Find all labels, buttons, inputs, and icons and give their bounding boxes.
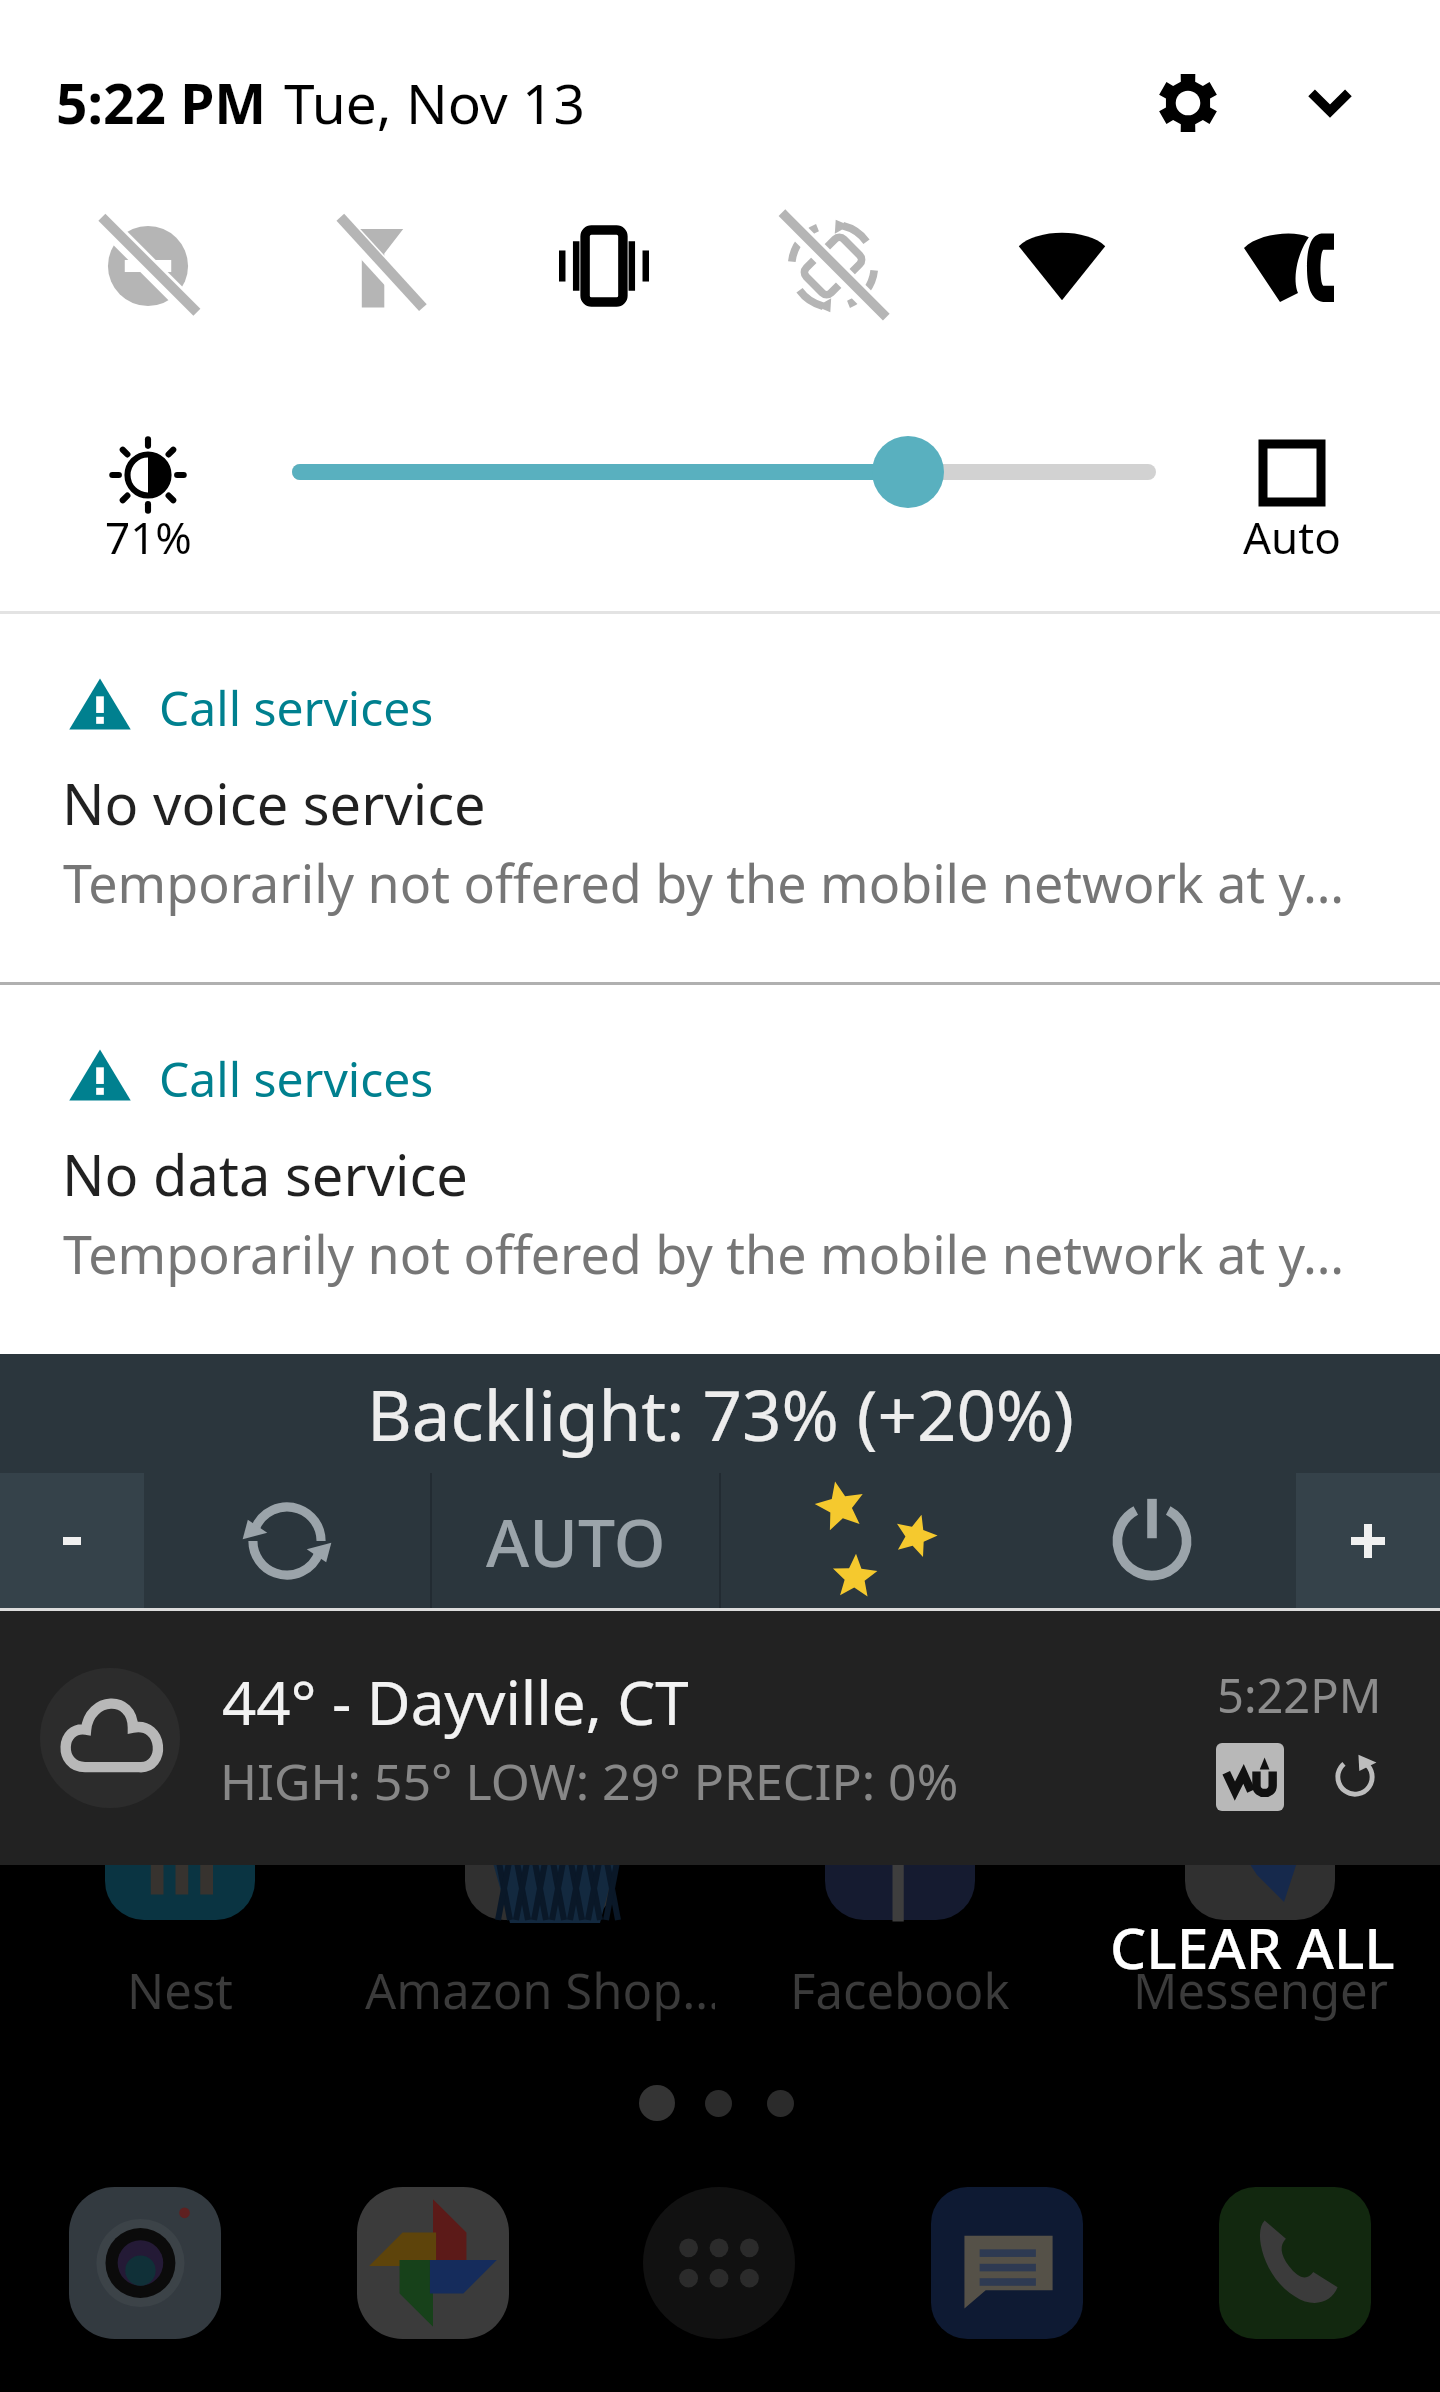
button[interactable]: Auto brightness <box>1222 430 1362 605</box>
button[interactable]: Call services <box>0 985 1440 1353</box>
staticText: Messenger <box>1133 1957 1388 2024</box>
button[interactable]: Messenger <box>1085 1760 1435 2050</box>
staticText: Temporarily not offered by the mobile ne… <box>63 847 1345 918</box>
button[interactable]: Facebook <box>725 1760 1075 2050</box>
staticText: Amazon Shop… <box>365 1957 715 2024</box>
button[interactable]: Phone <box>1219 2187 1371 2339</box>
button[interactable]: Increase backlight <box>1296 1473 1440 1608</box>
button[interactable]: Messages <box>931 2187 1083 2339</box>
button[interactable]: Decrease backlight <box>0 1473 144 1608</box>
button[interactable]: Vibrate <box>529 182 679 350</box>
button[interactable]: Auto refresh <box>144 1473 430 1608</box>
button[interactable]: Call services <box>0 614 1440 982</box>
staticText: AUTO <box>486 1496 666 1586</box>
staticText: Auto <box>1243 507 1341 567</box>
button[interactable]: Weather Underground <box>1216 1743 1284 1811</box>
staticText: 71% <box>105 507 192 567</box>
staticText: Nest <box>127 1957 234 2024</box>
button[interactable]: Settings <box>1138 53 1238 153</box>
staticText: No voice service <box>62 765 486 841</box>
staticText: No data service <box>62 1136 468 1212</box>
button[interactable]: AUTO <box>432 1473 719 1608</box>
button[interactable]: Camera <box>69 2187 221 2339</box>
staticText: Call services <box>159 675 434 740</box>
staticText: 5:22PM <box>1217 1663 1382 1727</box>
staticText: Tue, Nov 13 <box>284 65 586 140</box>
button[interactable]: All apps <box>643 2187 795 2339</box>
button[interactable]: Auto-rotate locked <box>758 182 908 350</box>
staticText: Backlight: 73% (+20%) <box>367 1367 1074 1461</box>
staticText: CLEAR ALL <box>1110 1908 1395 1986</box>
staticText: Call services <box>159 1046 434 1111</box>
staticText: 5:22 PM <box>56 65 267 140</box>
button[interactable]: Do not disturb off <box>73 182 223 350</box>
staticText: Temporarily not offered by the mobile ne… <box>63 1218 1345 1289</box>
button[interactable]: Brightness <box>78 428 218 603</box>
button[interactable]: Night light <box>721 1473 1008 1608</box>
staticText: 44° - Dayville, CT <box>222 1661 689 1743</box>
button[interactable]: Refresh weather <box>1326 1748 1384 1806</box>
button[interactable]: Wi-Fi <box>987 182 1137 350</box>
button[interactable]: Photos <box>357 2187 509 2339</box>
button[interactable]: Nest <box>5 1760 355 2050</box>
button[interactable]: CLEAR ALL <box>1098 1898 1407 1996</box>
button[interactable]: Flashlight off <box>303 182 453 350</box>
staticText: HIGH: 55° LOW: 29° PRECIP: 0% <box>220 1747 959 1815</box>
button[interactable]: Amazon Shop… <box>365 1760 715 2050</box>
button[interactable]: Expand quick settings <box>1280 52 1380 152</box>
button[interactable]: Mobile data <box>1214 182 1364 350</box>
button[interactable]: Power <box>1008 1473 1296 1608</box>
button[interactable]: 44° - Dayville, CT <box>0 1611 1440 1865</box>
staticText: Facebook <box>790 1957 1010 2024</box>
